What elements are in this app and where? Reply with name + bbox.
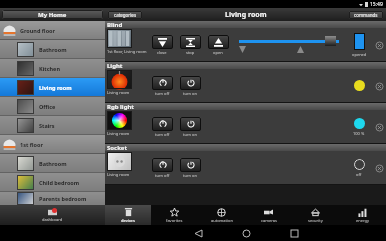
button[interactable]: More options [372,161,386,175]
staticText: Rgb light [107,103,134,110]
staticText: favorites [166,218,183,223]
button[interactable]: turn off [151,117,173,137]
button[interactable]: Kitchen [0,59,105,77]
staticText: Living room [107,131,130,136]
staticText: Living room [107,90,130,95]
button[interactable]: Bathroom [0,154,105,172]
button[interactable]: cameras [245,205,292,225]
button[interactable]: More options [372,38,386,52]
button[interactable]: turn off [151,76,173,96]
staticText: Stairs [39,122,55,129]
button[interactable]: security [292,205,339,225]
staticText: opened [352,52,367,57]
staticText: Living room [39,84,72,91]
staticText: Kitchen [39,65,60,72]
button[interactable]: My Home [2,10,103,19]
button[interactable]: Stairs [0,116,105,134]
button[interactable]: close [151,35,173,55]
button[interactable]: favorites [151,205,198,225]
button[interactable]: More options [372,120,386,134]
staticText: close [157,50,167,55]
staticText: off [356,172,362,177]
staticText: Ground floor [20,27,55,34]
staticText: 1st floor, Living room [107,49,147,54]
button[interactable]: Living room [0,78,105,96]
staticText: turn on [183,132,197,137]
button[interactable]: categories [108,11,142,19]
staticText: Living room [225,10,267,20]
staticText: turn off [155,91,170,96]
staticText: turn on [183,91,197,96]
staticText: devices [121,218,135,223]
staticText: 15:49 [370,1,383,8]
staticText: turn on [183,173,197,178]
staticText: My Home [38,11,67,19]
button[interactable]: devices [105,205,151,225]
staticText: Light [107,62,123,69]
staticText: categories [114,12,137,18]
button[interactable]: 1st floor [0,135,105,153]
button[interactable] [297,46,304,53]
button[interactable]: stop [179,35,201,55]
staticText: security [308,218,323,223]
button[interactable] [325,36,336,46]
button[interactable]: More options [372,79,386,93]
button[interactable]: turn on [179,158,201,178]
staticText: commands [354,12,378,18]
staticText: Socket [107,144,128,151]
button[interactable]: turn on [179,117,201,137]
staticText: 100 % [353,131,365,136]
staticText: Blind [107,21,123,28]
button[interactable]: open [207,35,229,55]
button[interactable] [239,46,246,53]
staticText: Bathroom [39,46,67,53]
button[interactable]: Home [239,226,253,240]
staticText: Parents bedroom [39,195,87,202]
button[interactable]: Bathroom [0,40,105,58]
staticText: Bathroom [39,160,67,167]
button[interactable]: energy [339,205,386,225]
button[interactable]: Child bedroom [0,173,105,191]
button[interactable]: commands [349,11,383,19]
staticText: turn off [155,173,170,178]
staticText: cameras [261,218,277,223]
button[interactable]: Parents bedroom [0,192,105,205]
staticText: stop [186,50,195,55]
button[interactable]: automation [198,205,245,225]
button[interactable]: turn off [151,158,173,178]
staticText: automation [211,218,233,223]
staticText: dashboard [42,217,63,222]
button[interactable]: Office [0,97,105,115]
staticText: open [213,50,223,55]
button[interactable]: Recents [287,226,301,240]
staticText: 1st floor [20,141,43,148]
staticText: turn off [155,132,170,137]
button[interactable]: Back [191,226,205,240]
button[interactable]: dashboard [0,205,105,225]
button[interactable]: turn on [179,76,201,96]
staticText: Office [39,103,56,110]
staticText: energy [356,218,370,223]
button[interactable]: Ground floor [0,21,105,39]
staticText: Living room [107,172,130,177]
staticText: Child bedroom [39,179,80,186]
